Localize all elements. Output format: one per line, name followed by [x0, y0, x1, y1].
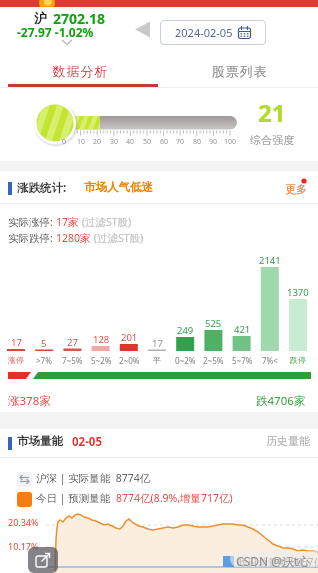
staticText: 更多: [285, 182, 307, 196]
button[interactable]: 股票列表: [159, 55, 318, 87]
staticText: 实际涨停:: [8, 215, 56, 229]
button[interactable]: 数据分析: [0, 55, 159, 87]
button[interactable]: [134, 21, 151, 38]
button[interactable]: 更多: [280, 176, 314, 198]
staticText: 2024-02-05: [175, 25, 233, 40]
staticText: 综合强度: [250, 133, 294, 147]
staticText: 421: [234, 323, 251, 336]
staticText: 跌4706家: [256, 393, 306, 409]
staticText: 7%<: [262, 355, 278, 366]
staticText: 40: [126, 137, 135, 147]
staticText: 100: [224, 137, 237, 147]
staticText: 525: [205, 317, 222, 330]
staticText: 8774亿(8.9%,增量717亿): [116, 491, 233, 505]
staticText: 10: [77, 137, 86, 147]
staticText: 02-05: [72, 434, 102, 450]
staticText: 17: [152, 337, 163, 350]
staticText: 2~5%: [203, 355, 224, 366]
staticText: 201: [121, 331, 138, 344]
staticText: (过滤ST股): [79, 215, 132, 229]
staticText: 数据分析: [52, 63, 108, 79]
staticText: 昨日总量能 8057亿: [238, 555, 318, 569]
staticText: 60: [160, 137, 169, 147]
staticText: 今日 | 预测量能: [36, 491, 116, 505]
staticText: 历史量能: [266, 434, 310, 448]
button[interactable]: [0, 0, 318, 7]
button[interactable]: [28, 547, 58, 573]
staticText: 市场人气低迷: [84, 180, 153, 194]
staticText: 17: [11, 336, 22, 349]
staticText: 10.17%: [8, 540, 39, 552]
staticText: 7~5%: [62, 355, 83, 366]
staticText: 249: [177, 324, 194, 337]
staticText: 2702.18: [53, 9, 105, 28]
staticText: 1370: [287, 286, 309, 299]
staticText: 17家: [56, 215, 79, 229]
staticText: 30: [110, 137, 119, 147]
staticText: (过滤ST股): [91, 231, 144, 245]
staticText: 市场量能: [17, 434, 63, 448]
staticText: 70: [176, 137, 185, 147]
staticText: 50: [143, 137, 152, 147]
staticText: 实际跌停:: [8, 231, 56, 245]
staticText: 128: [93, 333, 110, 346]
staticText: 沪深 | 实际量能 8774亿: [36, 471, 151, 485]
staticText: >7%: [36, 355, 52, 366]
staticText: 1280家: [56, 231, 91, 245]
staticText: 涨378家: [8, 393, 51, 409]
staticText: 5~7%: [232, 355, 253, 366]
staticText: 跌停: [290, 355, 306, 365]
staticText: 5: [41, 337, 47, 350]
button[interactable]: 历史量能: [260, 430, 314, 452]
staticText: 21: [258, 96, 286, 129]
staticText: 0~2%: [175, 355, 196, 366]
staticText: 20.34%: [8, 516, 39, 528]
staticText: 2~0%: [119, 355, 140, 366]
staticText: CSDN @沃t心: [236, 553, 311, 569]
staticText: 90: [209, 137, 218, 147]
staticText: 20: [93, 137, 102, 147]
staticText: 5~2%: [91, 355, 112, 366]
staticText: 沪: [34, 10, 47, 26]
staticText: 平: [153, 355, 161, 365]
button[interactable]: 2024-02-05: [160, 20, 266, 45]
staticText: 2141: [259, 254, 281, 267]
staticText: 80: [193, 137, 202, 147]
staticText: 27: [67, 336, 78, 349]
staticText: 0: [62, 137, 67, 147]
staticText: 涨停: [8, 355, 24, 365]
staticText: 涨跌统计:: [17, 180, 67, 196]
staticText: 股票列表: [211, 63, 267, 79]
staticText: -27.97 -1.02%: [17, 24, 94, 40]
